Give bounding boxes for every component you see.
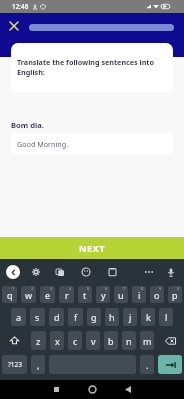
staticText: g	[91, 311, 97, 323]
staticText: x	[55, 335, 60, 347]
staticText: k	[146, 311, 151, 323]
button[interactable]: Clipboard	[105, 265, 119, 279]
button[interactable]: Settings	[29, 265, 43, 279]
staticText: o	[154, 289, 160, 301]
button[interactable]: Hide toolbar	[6, 265, 20, 279]
staticText: ,	[37, 359, 40, 371]
button[interactable]: l	[159, 308, 173, 326]
staticText: 2	[31, 286, 34, 291]
button[interactable]: More options	[142, 265, 156, 279]
button[interactable]: e	[40, 286, 55, 303]
staticText: 7	[123, 286, 126, 291]
staticText: z	[36, 335, 41, 347]
staticText: 3	[50, 286, 53, 291]
staticText: r	[65, 289, 69, 301]
button[interactable]: k	[141, 308, 155, 326]
staticText: Good Morning.	[17, 139, 69, 149]
button[interactable]: o	[150, 286, 164, 303]
staticText: l	[165, 311, 168, 323]
button[interactable]: Back	[117, 380, 139, 399]
staticText: m	[143, 335, 152, 347]
button[interactable]: Backspace	[157, 331, 183, 350]
button[interactable]: w	[21, 286, 36, 303]
button[interactable]: h	[105, 308, 119, 326]
staticText: Bom dia.	[11, 120, 44, 130]
staticText: u	[118, 289, 124, 301]
button[interactable]: ?123	[2, 355, 27, 374]
staticText: d	[54, 311, 60, 323]
staticText: j	[129, 311, 132, 323]
button[interactable]: f	[68, 308, 83, 326]
staticText: 8	[141, 286, 144, 291]
button[interactable]: v	[86, 331, 100, 350]
button[interactable]: m	[140, 331, 154, 350]
button[interactable]: Enter	[158, 355, 182, 374]
button[interactable]: n	[122, 331, 136, 350]
staticText: 1	[12, 286, 15, 291]
button[interactable]: q	[2, 286, 17, 303]
staticText: f	[74, 311, 78, 323]
staticText: 5	[87, 286, 90, 291]
staticText: 0	[177, 286, 180, 291]
button[interactable]: y	[96, 286, 110, 303]
staticText: q	[7, 289, 13, 301]
button[interactable]: t	[78, 286, 92, 303]
button[interactable]: Recents	[45, 380, 67, 399]
staticText: v	[91, 335, 96, 347]
button[interactable]: b	[104, 331, 118, 350]
button[interactable]: Home	[81, 380, 103, 399]
staticText: i	[138, 289, 141, 301]
button[interactable]: d	[49, 308, 64, 326]
staticText: w	[25, 289, 33, 301]
staticText: .	[146, 359, 149, 371]
button[interactable]: j	[123, 308, 137, 326]
staticText: y	[101, 289, 106, 301]
staticText: 9	[159, 286, 162, 291]
staticText: c	[73, 335, 78, 347]
staticText: Translate the following sentences into E…	[17, 57, 163, 77]
button[interactable]: Good Morning.	[11, 133, 173, 154]
staticText: 6	[105, 286, 108, 291]
button[interactable]: NEXT	[0, 237, 184, 259]
staticText: ?123	[8, 360, 22, 369]
staticText: n	[126, 335, 132, 347]
button[interactable]: g	[87, 308, 101, 326]
staticText: 12:48	[12, 2, 29, 11]
button[interactable]: u	[114, 286, 128, 303]
button[interactable]: p	[168, 286, 182, 303]
staticText: NEXT	[79, 242, 106, 254]
button[interactable]: s	[30, 308, 45, 326]
button[interactable]: i	[132, 286, 146, 303]
staticText: 4	[69, 286, 72, 291]
button[interactable]: Stickers	[53, 265, 67, 279]
button[interactable]: Close	[4, 16, 24, 36]
button[interactable]: .	[140, 355, 154, 374]
button[interactable]: Shift	[1, 331, 28, 350]
staticText: p	[172, 289, 178, 301]
button[interactable]: c	[68, 331, 82, 350]
button[interactable]: Voice input	[164, 265, 178, 279]
button[interactable]: r	[59, 286, 74, 303]
staticText: b	[108, 335, 114, 347]
staticText: t	[83, 289, 87, 301]
button[interactable]: ,	[31, 355, 45, 374]
staticText: a	[16, 311, 22, 323]
staticText: s	[35, 311, 40, 323]
button[interactable]: x	[50, 331, 64, 350]
staticText: e	[45, 289, 51, 301]
button[interactable]: a	[11, 308, 26, 326]
staticText: h	[109, 311, 115, 323]
button[interactable]: Emoji	[79, 265, 93, 279]
button[interactable]: z	[31, 331, 46, 350]
